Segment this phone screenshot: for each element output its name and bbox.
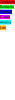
staticText: Amelia [0,20,11,24]
staticText: Contacts [0,5,14,9]
staticText: Chats [0,15,10,19]
staticText: Leo [0,25,6,30]
staticText: Groups [0,10,12,14]
staticText: Contacts [0,0,15,4]
